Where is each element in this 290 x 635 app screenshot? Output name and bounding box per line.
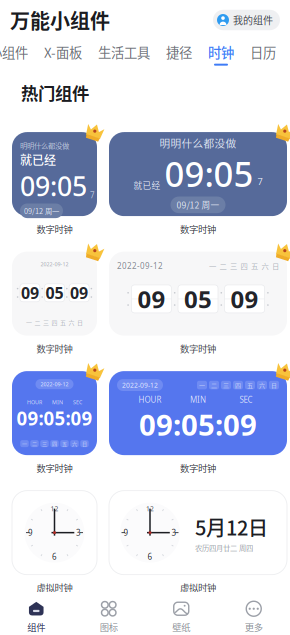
staticText: HOUR bbox=[27, 399, 42, 406]
button[interactable]: 图标 bbox=[72, 593, 145, 634]
staticText: 生活工具 bbox=[98, 42, 150, 62]
staticText: 更多 bbox=[245, 620, 263, 634]
staticText: 7 bbox=[257, 175, 262, 188]
staticText: 数字时钟 bbox=[180, 461, 216, 475]
staticText: 一 bbox=[22, 440, 27, 447]
staticText: 2022-09-12 bbox=[117, 261, 163, 271]
button[interactable]: 生活工具 bbox=[98, 42, 150, 66]
staticText: 万能小组件 bbox=[10, 5, 110, 34]
button[interactable]: 日历 bbox=[250, 42, 276, 66]
staticText: 捷径 bbox=[166, 42, 192, 62]
staticText: 组件 bbox=[27, 620, 45, 634]
staticText: 09 bbox=[21, 282, 39, 303]
staticText: 5月12日 bbox=[195, 512, 268, 541]
staticText: 时钟 bbox=[208, 42, 234, 62]
staticText: 09:05 bbox=[20, 168, 87, 203]
button[interactable]: X-面板 bbox=[44, 42, 82, 66]
staticText: 日 bbox=[272, 261, 279, 271]
staticText: 五 bbox=[62, 440, 67, 447]
staticText: 明明什么都没做 bbox=[20, 140, 69, 151]
staticText: 09:05:09 bbox=[16, 406, 92, 431]
button[interactable]: 更多 bbox=[217, 593, 290, 634]
staticText: 明明什么都没做 bbox=[159, 135, 236, 150]
staticText: 五 bbox=[251, 261, 258, 271]
staticText: 日 bbox=[271, 381, 277, 389]
staticText: SEC bbox=[73, 399, 82, 406]
staticText: HOUR bbox=[138, 394, 161, 405]
button[interactable]: 壁纸 bbox=[145, 593, 217, 634]
staticText: 二 bbox=[211, 381, 217, 389]
button[interactable]: 明明什么都没做 bbox=[109, 132, 287, 236]
staticText: 四 bbox=[235, 381, 241, 389]
staticText: 09/12 周一 bbox=[176, 199, 219, 211]
staticText: 就已经 bbox=[20, 151, 56, 168]
staticText: 热门组件 bbox=[21, 80, 89, 105]
staticText: 6 bbox=[52, 551, 57, 562]
button[interactable]: 组件 bbox=[0, 593, 72, 634]
button[interactable]: 捷径 bbox=[166, 42, 192, 66]
staticText: 数字时钟 bbox=[36, 342, 72, 355]
button[interactable]: 2022-09-12 bbox=[109, 252, 287, 355]
staticText: 3 bbox=[171, 527, 176, 538]
staticText: 05 bbox=[184, 283, 212, 315]
button[interactable]: 明明什么都没做 bbox=[12, 132, 97, 236]
staticText: 三 bbox=[230, 261, 237, 271]
staticText: 小组件 bbox=[0, 42, 28, 62]
staticText: 四 bbox=[240, 261, 247, 271]
staticText: 三 bbox=[42, 440, 47, 447]
staticText: 三 bbox=[43, 318, 49, 327]
staticText: 7 bbox=[90, 190, 95, 200]
staticText: 四 bbox=[51, 318, 57, 327]
staticText: 三 bbox=[223, 381, 229, 389]
staticText: 二 bbox=[219, 261, 226, 271]
staticText: 数字时钟 bbox=[180, 342, 216, 355]
staticText: 09 bbox=[137, 283, 165, 315]
button[interactable]: 我的组件 bbox=[213, 10, 280, 30]
staticText: 6 bbox=[147, 551, 152, 562]
staticText: X-面板 bbox=[44, 42, 82, 62]
staticText: 壁纸 bbox=[172, 620, 190, 634]
button[interactable]: 2022-09-12 bbox=[12, 252, 97, 355]
button[interactable]: 12 bbox=[12, 491, 97, 594]
staticText: 数字时钟 bbox=[36, 461, 72, 475]
staticText: 农历四月廿二 周四 bbox=[195, 542, 253, 553]
button[interactable]: 2022-09-12 bbox=[109, 371, 287, 475]
staticText: 12 bbox=[146, 504, 154, 513]
staticText: 日 bbox=[77, 318, 83, 327]
button[interactable]: 12 bbox=[109, 491, 287, 594]
staticText: 09 bbox=[70, 282, 88, 303]
staticText: 五 bbox=[60, 318, 66, 327]
staticText: 12 bbox=[50, 504, 58, 513]
staticText: 六 bbox=[261, 261, 268, 271]
staticText: 虚拟时钟 bbox=[180, 581, 216, 594]
staticText: 9 bbox=[28, 527, 33, 538]
staticText: 日历 bbox=[250, 42, 276, 62]
button[interactable]: 2022-09-12 bbox=[12, 371, 97, 475]
staticText: 2022-09-12 bbox=[40, 261, 68, 268]
button[interactable]: 小组件 bbox=[0, 42, 28, 66]
button[interactable]: 时钟 bbox=[208, 42, 234, 66]
staticText: 六 bbox=[259, 381, 265, 389]
staticText: 05 bbox=[45, 282, 63, 303]
staticText: 就已经 bbox=[133, 179, 160, 191]
staticText: 一 bbox=[209, 261, 216, 271]
staticText: 一 bbox=[26, 318, 32, 327]
staticText: MIN bbox=[190, 394, 206, 405]
staticText: 一 bbox=[199, 381, 205, 389]
staticText: 09 bbox=[231, 283, 259, 315]
staticText: 09:05:09 bbox=[139, 405, 257, 444]
staticText: 数字时钟 bbox=[180, 222, 216, 236]
staticText: 图标 bbox=[100, 620, 118, 634]
staticText: 四 bbox=[52, 440, 57, 447]
staticText: SEC bbox=[239, 394, 252, 405]
staticText: 3 bbox=[76, 527, 81, 538]
staticText: 二 bbox=[34, 318, 40, 327]
staticText: 六 bbox=[68, 318, 74, 327]
staticText: MIN bbox=[52, 399, 63, 406]
staticText: 数字时钟 bbox=[36, 222, 72, 236]
staticText: 2022-09-12 bbox=[40, 381, 68, 388]
staticText: 日 bbox=[82, 440, 87, 447]
staticText: 2022-09-12 bbox=[122, 381, 158, 389]
staticText: 09/12 周一 bbox=[24, 205, 59, 216]
staticText: 我的组件 bbox=[233, 13, 273, 27]
